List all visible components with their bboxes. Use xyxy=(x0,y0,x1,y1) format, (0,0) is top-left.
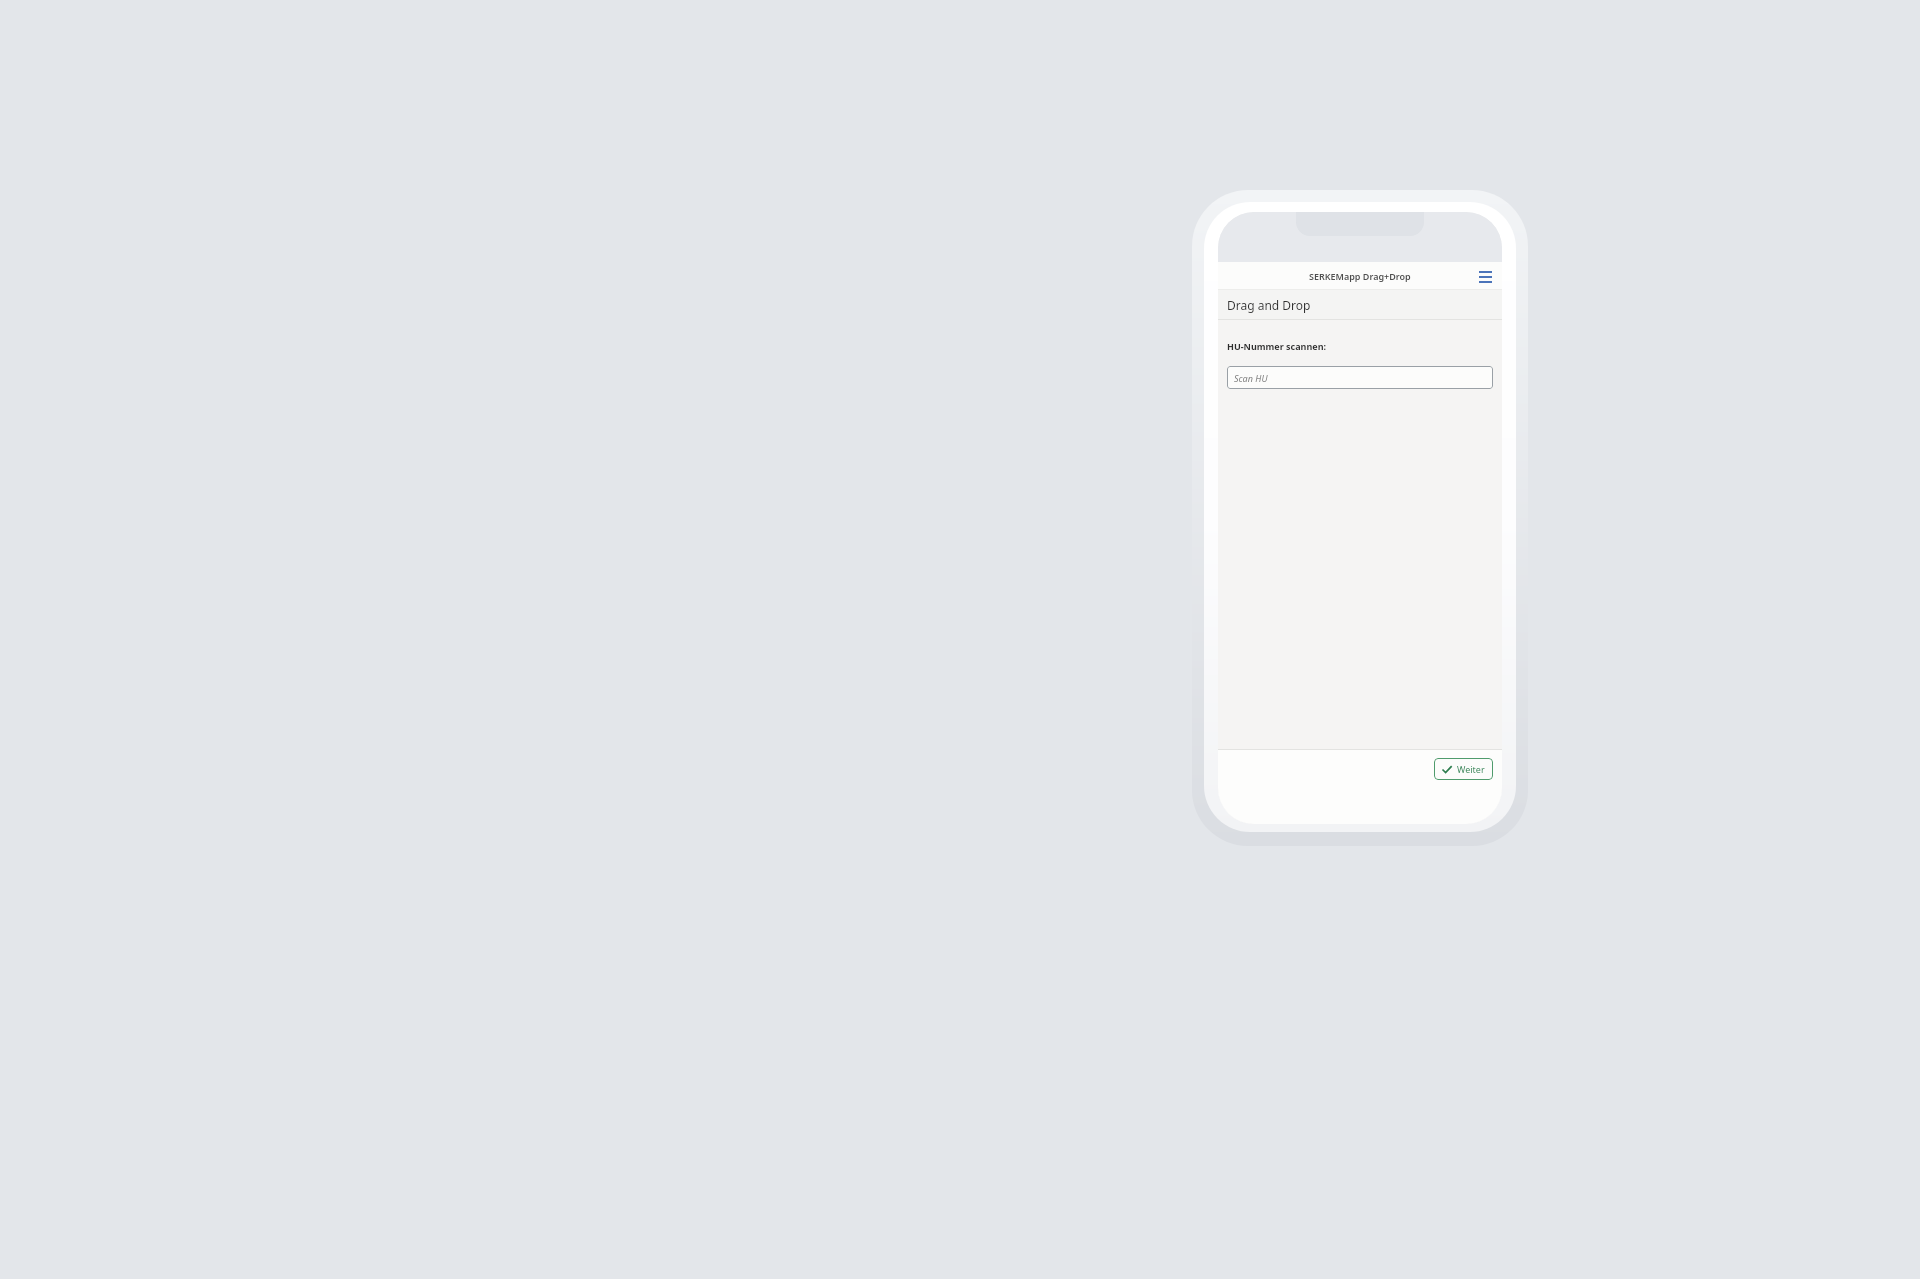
button[interactable]: Scan HU xyxy=(1227,366,1493,389)
button[interactable]: Weiter xyxy=(1434,758,1493,780)
staticText: Scan HU xyxy=(1234,372,1268,384)
staticText: SERKEMapp Drag+Drop xyxy=(1309,270,1411,282)
staticText: HU-Nummer scannen: xyxy=(1227,340,1327,352)
staticText: Drag and Drop xyxy=(1227,297,1311,313)
staticText: Weiter xyxy=(1457,763,1485,775)
button[interactable]: Open menu xyxy=(1474,265,1496,287)
